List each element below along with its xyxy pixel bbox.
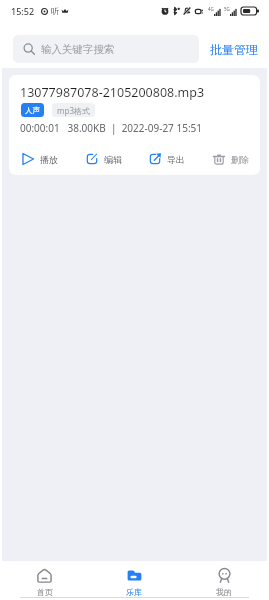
button[interactable]: 编辑: [86, 153, 122, 165]
staticText: 15:52: [11, 5, 35, 17]
staticText: 导出: [167, 154, 185, 165]
button[interactable]: 删除: [213, 153, 249, 165]
staticText: 人声: [25, 106, 40, 115]
staticText: 13077987078-2105200808.mp3: [20, 84, 205, 101]
button[interactable]: 13077987078-2105200808.mp3: [9, 75, 260, 175]
staticText: mp3格式: [57, 105, 90, 116]
button[interactable]: 播放: [22, 153, 58, 165]
button[interactable]: 我的: [179, 561, 269, 597]
button[interactable]: 输入关键字搜索: [13, 35, 199, 63]
staticText: 删除: [231, 154, 249, 165]
staticText: 乐库: [126, 587, 142, 597]
staticText: 5G: [224, 6, 230, 12]
button[interactable]: 乐库: [89, 561, 179, 597]
button[interactable]: 首页: [0, 561, 89, 597]
button[interactable]: 导出: [149, 153, 185, 165]
staticText: 播放: [40, 154, 58, 165]
staticText: 编辑: [104, 154, 122, 165]
button[interactable]: 批量管理: [210, 37, 258, 62]
staticText: 我的: [216, 587, 232, 597]
staticText: 4G: [208, 6, 214, 12]
staticText: 听: [51, 6, 59, 16]
staticText: 首页: [37, 587, 53, 597]
staticText: 输入关键字搜索: [41, 43, 115, 56]
staticText: 00:00:01 38.00KB | 2022-09-27 15:51: [20, 121, 202, 135]
staticText: 批量管理: [210, 42, 258, 57]
